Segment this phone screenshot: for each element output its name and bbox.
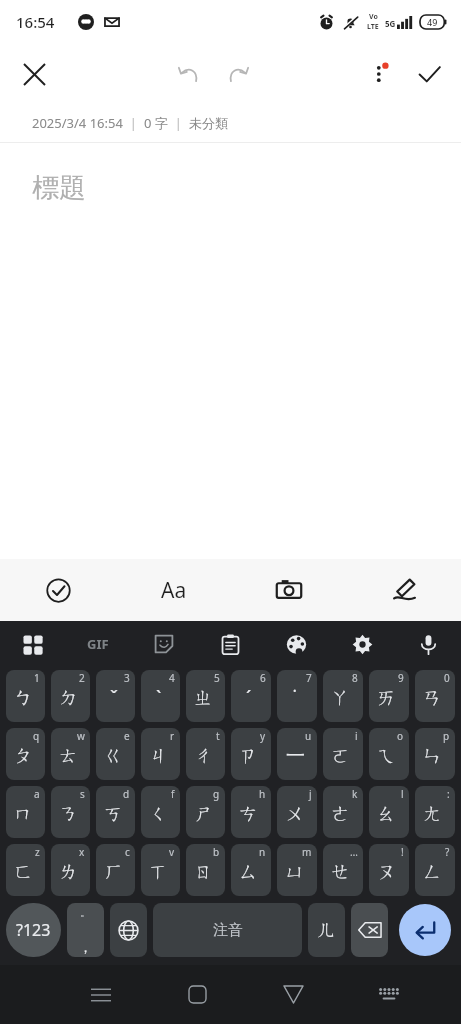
staticText: v [169, 845, 175, 859]
button[interactable]: ㄛ [323, 728, 363, 780]
staticText: k [352, 787, 358, 801]
staticText: ㄡ [377, 860, 397, 884]
button[interactable]: Settings [329, 621, 395, 667]
button[interactable]: ㄓ [186, 670, 225, 722]
button[interactable]: Redo [214, 50, 262, 98]
button[interactable]: ㄢ [415, 670, 455, 722]
button[interactable]: ㄔ [186, 728, 225, 780]
button[interactable]: Change keyboard [110, 903, 147, 957]
button[interactable]: Clipboard [197, 621, 263, 667]
staticText: 4 [169, 671, 175, 685]
button[interactable]: ㄘ [231, 786, 271, 838]
staticText: 5 [214, 671, 220, 685]
button[interactable]: 注音 [153, 903, 302, 957]
staticText: 一 [286, 744, 305, 768]
button[interactable]: Text format [116, 559, 231, 621]
button[interactable]: ㄆ [6, 728, 45, 780]
button[interactable]: ˙ [277, 670, 317, 722]
button[interactable]: ㄤ [415, 786, 455, 838]
staticText: e [124, 729, 130, 743]
button[interactable]: Themes [263, 621, 329, 667]
button[interactable]: ㄇ [6, 786, 45, 838]
staticText: ㄨ [285, 802, 305, 826]
staticText: h [259, 787, 266, 801]
button[interactable]: Back [245, 965, 341, 1024]
button[interactable]: ㄞ [369, 670, 409, 722]
button[interactable]: ㄗ [231, 728, 271, 780]
button[interactable]: ㄌ [51, 844, 90, 896]
staticText: a [34, 787, 40, 801]
staticText: b [213, 845, 220, 859]
button[interactable]: 。 [67, 903, 104, 957]
staticText: ˙ [293, 685, 297, 711]
staticText: s [80, 787, 85, 801]
button[interactable]: ˊ [231, 670, 271, 722]
button[interactable]: Recents [53, 965, 149, 1024]
button[interactable]: Stickers [131, 621, 197, 667]
button[interactable]: Draw [346, 559, 461, 621]
staticText: j [309, 787, 312, 801]
button[interactable]: ㄙ [231, 844, 271, 896]
button[interactable]: Camera [231, 559, 346, 621]
button[interactable]: ㄦ [308, 903, 345, 957]
button[interactable]: ㄒ [141, 844, 180, 896]
staticText: ㄑ [149, 802, 169, 826]
button[interactable]: Home [149, 965, 245, 1024]
staticText: ㄆ [14, 744, 34, 768]
button[interactable]: ㄥ [415, 844, 455, 896]
button[interactable]: ?123 [6, 903, 61, 957]
button[interactable]: Save [405, 50, 453, 98]
button[interactable]: ㄑ [141, 786, 180, 838]
button[interactable]: More options [357, 50, 405, 98]
button[interactable]: Enter [399, 904, 451, 956]
button[interactable]: ㄖ [186, 844, 225, 896]
button[interactable]: ㄩ [277, 844, 317, 896]
button[interactable]: ㄎ [96, 786, 135, 838]
button[interactable]: ㄈ [6, 844, 45, 896]
button[interactable]: Voice input [395, 621, 461, 667]
staticText: r [170, 729, 175, 743]
button[interactable]: ㄋ [51, 786, 90, 838]
staticText: t [216, 729, 220, 743]
button[interactable]: GIF [65, 621, 131, 667]
staticText: ㄋ [59, 802, 79, 826]
button[interactable]: ㄏ [96, 844, 135, 896]
staticText: ㄞ [377, 686, 397, 710]
button[interactable]: ㄠ [369, 786, 409, 838]
button[interactable]: ㄣ [415, 728, 455, 780]
staticText: ㄦ [317, 918, 337, 942]
button[interactable]: ㄚ [323, 670, 363, 722]
button[interactable]: 一 [277, 728, 317, 780]
staticText: ㄢ [423, 686, 443, 710]
button[interactable]: Hide keyboard [341, 965, 437, 1024]
staticText: ㄔ [194, 744, 214, 768]
staticText: Vo [369, 12, 378, 22]
button[interactable]: ㄜ [323, 786, 363, 838]
staticText: d [123, 787, 130, 801]
button[interactable]: ˇ [96, 670, 135, 722]
staticText: ㄛ [331, 744, 351, 768]
button[interactable]: ㄝ [323, 844, 363, 896]
staticText: g [213, 787, 220, 801]
staticText: ， [79, 939, 92, 955]
button[interactable]: Close [10, 50, 58, 98]
staticText: ㄕ [194, 802, 214, 826]
button[interactable]: ㄊ [51, 728, 90, 780]
staticText: 2 [79, 671, 85, 685]
button[interactable]: Undo [164, 50, 212, 98]
staticText: … [350, 845, 358, 859]
button[interactable]: Apps [0, 621, 65, 667]
button[interactable]: ㄉ [51, 670, 90, 722]
button[interactable]: ㄕ [186, 786, 225, 838]
button[interactable]: ㄍ [96, 728, 135, 780]
button[interactable]: ㄨ [277, 786, 317, 838]
staticText: ˊ [246, 685, 252, 711]
button[interactable]: ㄐ [141, 728, 180, 780]
button[interactable]: ˋ [141, 670, 180, 722]
staticText: ㄒ [149, 860, 169, 884]
button[interactable]: ㄡ [369, 844, 409, 896]
button[interactable]: Checklist [0, 559, 116, 621]
button[interactable]: Backspace [351, 903, 388, 957]
button[interactable]: ㄅ [6, 670, 45, 722]
button[interactable]: ㄟ [369, 728, 409, 780]
